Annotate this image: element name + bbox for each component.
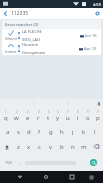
- staticText: d: [27, 128, 31, 136]
- staticText: LA FLECHE: [22, 29, 42, 34]
- button[interactable]: ?123: [1, 155, 16, 170]
- staticText: 6: [57, 110, 59, 114]
- staticText: l: [94, 128, 96, 136]
- button[interactable]: m: [78, 139, 89, 154]
- button[interactable]: k: [78, 124, 89, 139]
- button[interactable]: 1: [0, 108, 11, 124]
- staticText: ?123: [5, 161, 12, 165]
- staticText: u: [66, 114, 70, 122]
- staticText: b: [60, 143, 64, 151]
- staticText: v: [49, 143, 53, 151]
- button[interactable]: g: [45, 124, 56, 139]
- button[interactable]: j: [67, 124, 78, 139]
- button[interactable]: f: [34, 124, 45, 139]
- button[interactable]: Search options: [92, 8, 103, 19]
- staticText: Houston: [22, 42, 39, 47]
- staticText: c: [38, 143, 41, 151]
- staticText: Exact matches (2): [5, 22, 39, 27]
- button[interactable]: l: [89, 124, 100, 139]
- staticText: a: [6, 128, 10, 136]
- staticText: 1: [5, 110, 7, 114]
- staticText: w: [14, 114, 19, 122]
- button[interactable]: 5: [43, 108, 53, 124]
- button[interactable]: 6: [53, 108, 63, 124]
- button[interactable]: Back: [0, 8, 11, 19]
- staticText: t: [47, 114, 50, 122]
- staticText: h: [60, 128, 64, 136]
- staticText: Apr 10: [84, 46, 97, 51]
- staticText: z: [17, 143, 20, 151]
- staticText: Georgetown: [22, 50, 46, 55]
- button[interactable]: Voice input: [94, 99, 103, 108]
- button[interactable]: 0: [93, 108, 103, 124]
- button[interactable]: 3: [22, 108, 33, 124]
- button[interactable]: x: [23, 139, 34, 154]
- button[interactable]: Home: [40, 171, 52, 183]
- staticText: Jun 16: [85, 33, 97, 38]
- button[interactable]: n: [67, 139, 78, 154]
- staticText: s: [17, 128, 20, 136]
- staticText: x: [27, 143, 31, 151]
- staticText: 7: [67, 110, 69, 114]
- staticText: .: [80, 160, 82, 165]
- button[interactable]: 2: [11, 108, 22, 124]
- staticText: 8: [77, 110, 79, 114]
- staticText: p: [96, 114, 100, 122]
- button[interactable]: Back: [14, 171, 26, 183]
- button[interactable]: In transit: [2, 42, 101, 55]
- staticText: i: [77, 114, 79, 122]
- button[interactable]: ,: [16, 155, 25, 170]
- staticText: 9: [87, 110, 89, 114]
- button[interactable]: a: [3, 124, 13, 139]
- staticText: 4: [38, 110, 40, 114]
- staticText: 3: [27, 110, 29, 114]
- staticText: y: [56, 114, 60, 122]
- staticText: 4:59: [93, 2, 101, 7]
- button[interactable]: Shift: [0, 139, 13, 154]
- button[interactable]: 4: [33, 108, 43, 124]
- staticText: 0: [97, 110, 99, 114]
- button[interactable]: 7: [63, 108, 73, 124]
- staticText: o: [86, 114, 90, 122]
- button[interactable]: 9: [83, 108, 93, 124]
- button[interactable]: 8: [73, 108, 83, 124]
- button[interactable]: Backspace: [89, 139, 103, 154]
- staticText: In transit: [5, 50, 17, 54]
- staticText: 112335: [11, 10, 92, 17]
- button[interactable]: z: [13, 139, 23, 154]
- staticText: n: [71, 143, 75, 151]
- staticText: g: [49, 128, 53, 136]
- staticText: m: [81, 143, 87, 151]
- staticText: Delivered: [5, 37, 17, 41]
- staticText: j: [72, 128, 74, 136]
- staticText: 2: [16, 110, 18, 114]
- button[interactable]: v: [45, 139, 56, 154]
- staticText: r: [37, 114, 40, 122]
- button[interactable]: Search: [90, 159, 97, 166]
- button[interactable]: h: [56, 124, 67, 139]
- button[interactable]: Recents: [66, 171, 78, 183]
- button[interactable]: b: [56, 139, 67, 154]
- button[interactable]: c: [34, 139, 45, 154]
- staticText: SIEG_LAO: [22, 37, 41, 42]
- button[interactable]: d: [23, 124, 34, 139]
- button[interactable]: Delivered: [2, 29, 101, 42]
- staticText: f: [38, 128, 41, 136]
- staticText: k: [82, 128, 86, 136]
- button[interactable]: s: [13, 124, 23, 139]
- staticText: 5: [48, 110, 50, 114]
- staticText: q: [4, 114, 8, 122]
- staticText: e: [26, 114, 30, 122]
- button[interactable]: Keyboard switcher: [86, 172, 96, 182]
- staticText: ,: [20, 160, 22, 165]
